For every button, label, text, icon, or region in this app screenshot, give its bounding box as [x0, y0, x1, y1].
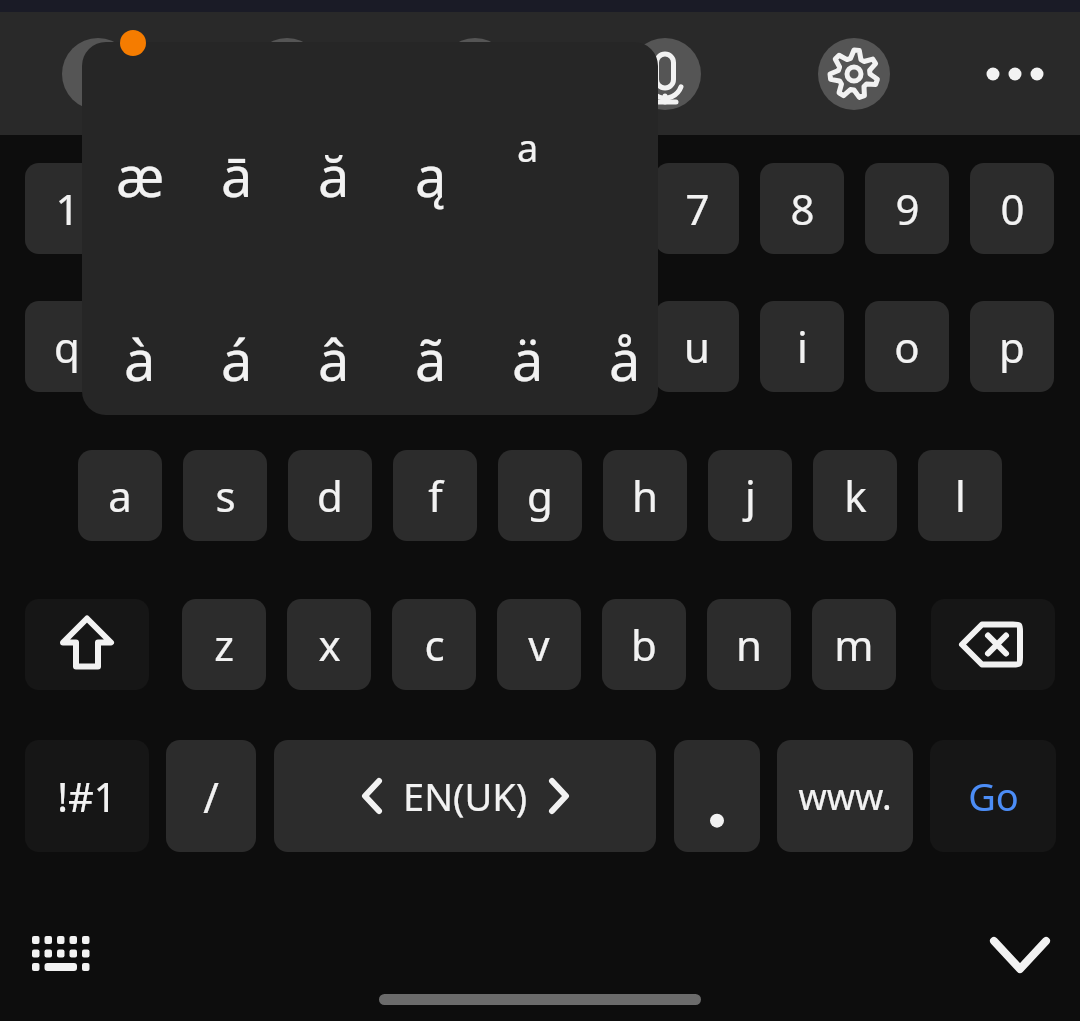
staticText: u: [684, 318, 710, 375]
staticText: å: [609, 321, 641, 397]
staticText: EN(UK): [403, 770, 528, 822]
button[interactable]: 7: [655, 163, 739, 254]
button[interactable]: n: [707, 599, 791, 690]
button[interactable]: å: [577, 304, 658, 414]
button[interactable]: w: [130, 301, 214, 392]
button[interactable]: y: [550, 301, 634, 392]
button[interactable]: Go: [930, 740, 1056, 852]
button[interactable]: s: [183, 450, 267, 541]
staticText: 8: [790, 180, 815, 237]
button[interactable]: ä: [480, 304, 576, 414]
staticText: a: [108, 467, 132, 524]
staticText: q: [54, 318, 80, 375]
button[interactable]: i: [760, 301, 844, 392]
button[interactable]: p: [970, 301, 1054, 392]
staticText: â: [318, 321, 350, 397]
button[interactable]: á: [189, 304, 285, 414]
staticText: !#1: [57, 769, 117, 823]
button[interactable]: a: [78, 450, 162, 541]
button[interactable]: www.: [777, 740, 913, 852]
button[interactable]: Toolbar action 2: [251, 38, 323, 110]
button[interactable]: q: [25, 301, 109, 392]
button[interactable]: m: [812, 599, 896, 690]
button[interactable]: 0: [970, 163, 1054, 254]
button[interactable]: o: [865, 301, 949, 392]
button[interactable]: Space, EN(UK): [274, 740, 656, 852]
button[interactable]: Toolbar action 3: [439, 38, 511, 110]
button[interactable]: r: [340, 301, 424, 392]
button[interactable]: Hide keyboard: [975, 910, 1065, 998]
button[interactable]: j: [708, 450, 792, 541]
button[interactable]: /: [166, 740, 256, 852]
staticText: 7: [685, 180, 710, 237]
button[interactable]: æ: [92, 120, 188, 230]
staticText: www.: [798, 772, 892, 821]
button[interactable]: ā: [189, 120, 285, 230]
button[interactable]: u: [655, 301, 739, 392]
button[interactable]: ã: [383, 304, 479, 414]
button[interactable]: f: [393, 450, 477, 541]
staticText: m: [834, 616, 874, 673]
button[interactable]: Shift: [25, 599, 149, 690]
button[interactable]: Settings: [818, 38, 890, 110]
button[interactable]: 4: [340, 163, 424, 254]
button[interactable]: x: [287, 599, 371, 690]
staticText: ā: [221, 137, 253, 213]
button[interactable]: a: [480, 102, 576, 192]
staticText: /: [203, 768, 219, 825]
button[interactable]: v: [497, 599, 581, 690]
staticText: á: [221, 321, 253, 397]
staticText: l: [955, 467, 966, 524]
button[interactable]: z: [182, 599, 266, 690]
staticText: x: [318, 616, 341, 673]
button[interactable]: â: [286, 304, 382, 414]
button[interactable]: ą: [383, 120, 479, 230]
staticText: v: [528, 616, 550, 673]
button[interactable]: 1: [25, 163, 109, 254]
staticText: j: [745, 467, 756, 524]
button[interactable]: Toolbar action 4: [629, 38, 701, 110]
staticText: ä: [512, 321, 544, 397]
button[interactable]: c: [392, 599, 476, 690]
button[interactable]: Period: [674, 740, 760, 852]
button[interactable]: Toolbar action 5: [818, 38, 890, 110]
button[interactable]: h: [603, 450, 687, 541]
button[interactable]: 2: [130, 163, 214, 254]
staticText: n: [736, 616, 762, 673]
button[interactable]: Switch keyboard: [14, 910, 104, 998]
button[interactable]: 8: [760, 163, 844, 254]
button[interactable]: l: [918, 450, 1002, 541]
button[interactable]: e: [235, 301, 319, 392]
button[interactable]: 9: [865, 163, 949, 254]
staticText: h: [632, 467, 658, 524]
button[interactable]: More options: [979, 38, 1051, 110]
button[interactable]: t: [445, 301, 529, 392]
staticText: ă: [318, 137, 350, 213]
staticText: Go: [968, 770, 1019, 822]
button[interactable]: k: [813, 450, 897, 541]
button[interactable]: ă: [286, 120, 382, 230]
staticText: o: [894, 318, 920, 375]
button[interactable]: à: [92, 304, 188, 414]
staticText: 1: [55, 180, 80, 237]
button[interactable]: b: [602, 599, 686, 690]
staticText: ã: [415, 321, 447, 397]
button[interactable]: Toolbar action 1: [62, 38, 134, 110]
button[interactable]: g: [498, 450, 582, 541]
staticText: ą: [415, 137, 447, 213]
staticText: s: [215, 467, 236, 524]
staticText: à: [124, 321, 156, 397]
button[interactable]: 3: [235, 163, 319, 254]
button[interactable]: d: [288, 450, 372, 541]
staticText: z: [214, 616, 234, 673]
button[interactable]: Backspace: [931, 599, 1055, 690]
button[interactable]: !#1: [25, 740, 149, 852]
